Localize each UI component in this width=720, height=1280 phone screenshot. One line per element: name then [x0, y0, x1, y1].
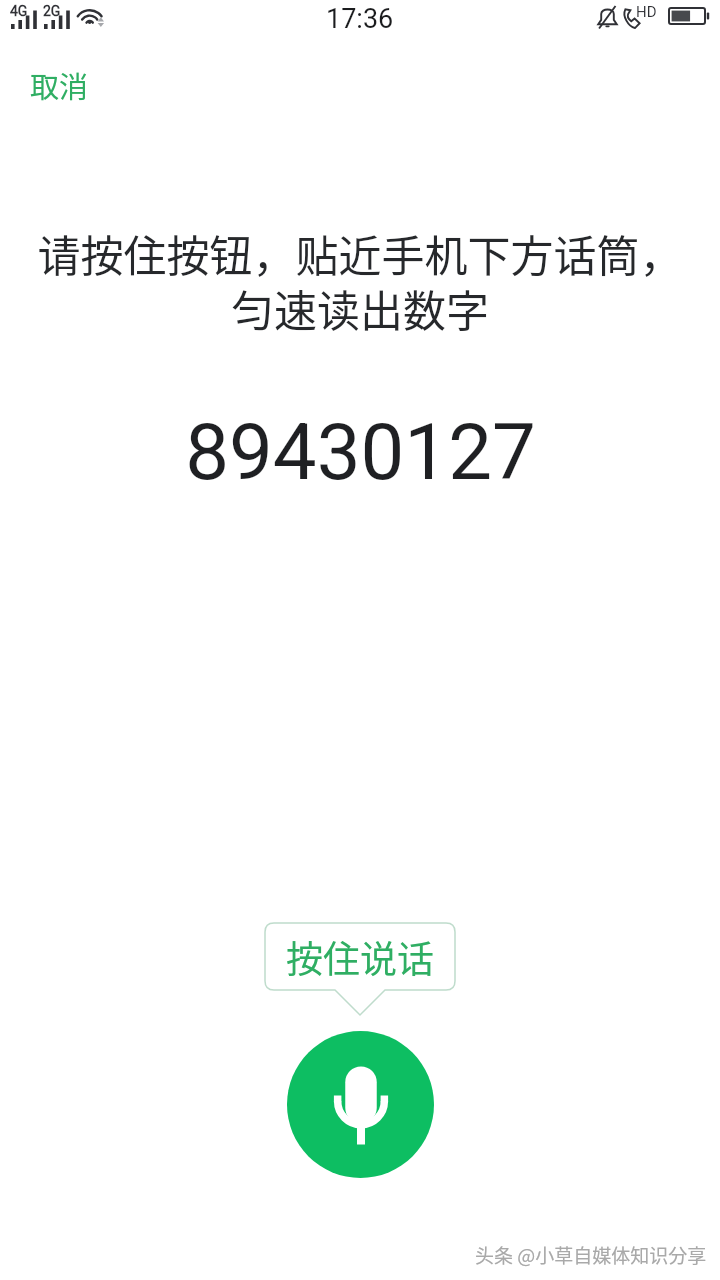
- staticText: HD: [636, 3, 657, 21]
- staticText: 取消: [30, 64, 89, 106]
- button[interactable]: 按住说话 录音: [287, 1031, 434, 1178]
- staticText: 2G: [43, 3, 61, 19]
- button[interactable]: 按住说话: [265, 923, 455, 1015]
- staticText: 按住说话: [286, 930, 434, 984]
- staticText: 请按住按钮，贴近手机下方话筒，匀速读出数字: [28, 222, 692, 339]
- staticText: 4G: [10, 3, 28, 19]
- staticText: 头条 @小草自媒体知识分享: [475, 1241, 707, 1269]
- staticText: 89430127: [185, 407, 536, 498]
- staticText: 17:36: [326, 3, 394, 35]
- button[interactable]: 取消: [16, 56, 103, 114]
